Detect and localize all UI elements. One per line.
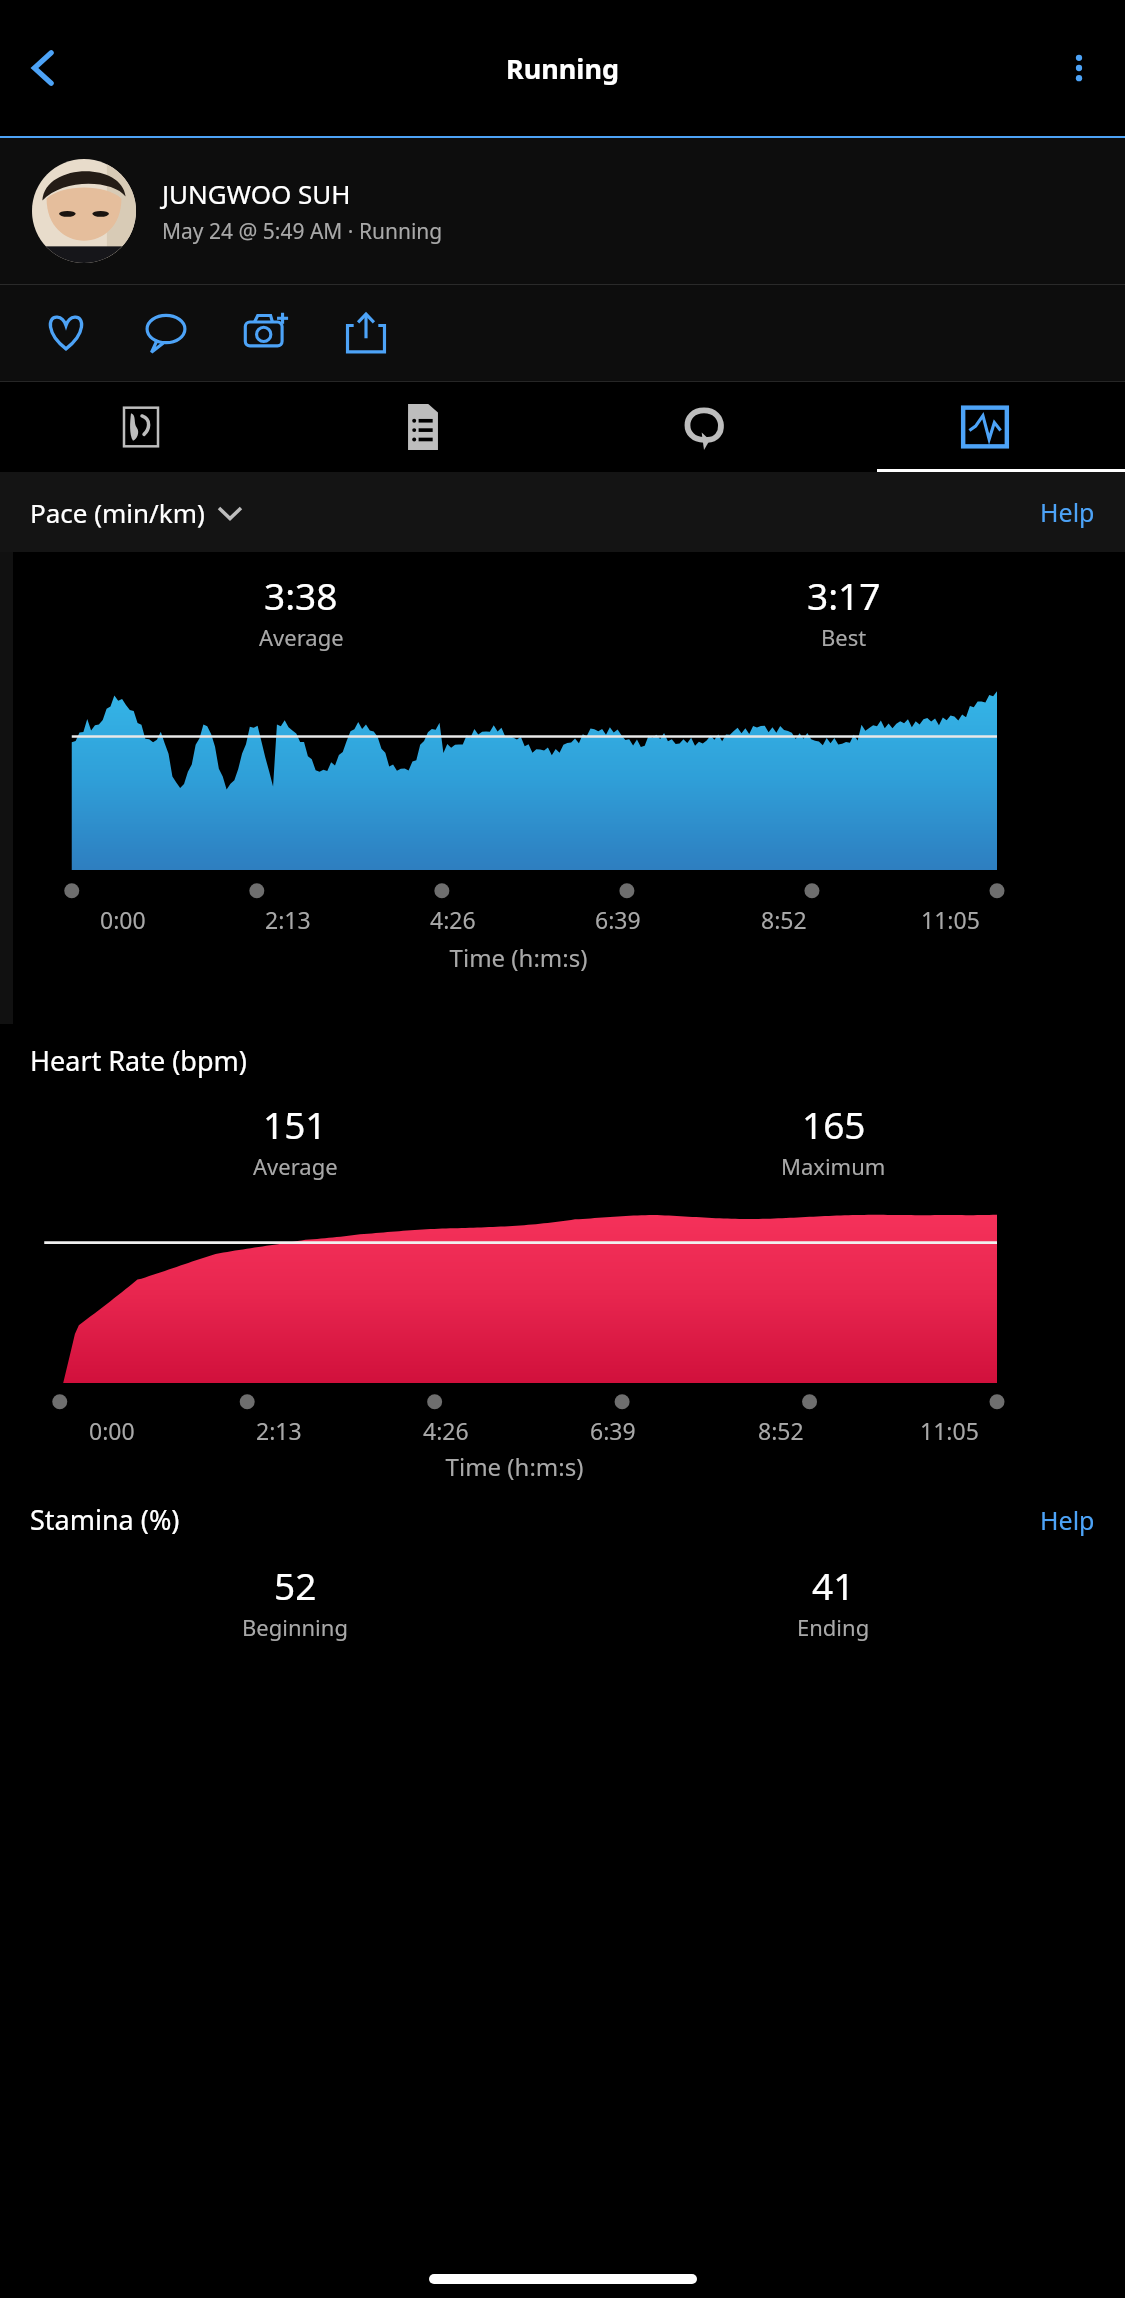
- staticText: 0:00: [89, 1415, 135, 1446]
- staticText: Heart Rate (bpm): [30, 1042, 247, 1079]
- button[interactable]: JUNGWOO SUH: [0, 138, 1125, 284]
- staticText: 52: [274, 1560, 317, 1610]
- staticText: 8:52: [761, 904, 807, 935]
- staticText: Beginning: [242, 1612, 348, 1642]
- staticText: Average: [259, 622, 344, 652]
- staticText: Pace (min/km): [30, 495, 205, 530]
- staticText: Running: [506, 50, 620, 87]
- button[interactable]: Pace (min/km): [30, 495, 241, 530]
- button[interactable]: Laps: [563, 382, 844, 472]
- staticText: May 24 @ 5:49 AM · Running: [162, 217, 443, 246]
- button[interactable]: Help: [1040, 1503, 1095, 1537]
- staticText: Ending: [797, 1612, 870, 1642]
- staticText: 41: [812, 1560, 855, 1610]
- button[interactable]: Charts: [844, 382, 1125, 472]
- button[interactable]: Details: [282, 382, 563, 472]
- staticText: 3:38: [264, 570, 338, 620]
- staticText: 151: [263, 1099, 327, 1149]
- staticText: 11:05: [920, 1415, 979, 1446]
- staticText: 3:17: [807, 570, 881, 620]
- button[interactable]: Help: [1040, 495, 1095, 529]
- button[interactable]: Share: [316, 285, 416, 381]
- staticText: Best: [821, 622, 867, 652]
- staticText: 6:39: [590, 1415, 636, 1446]
- staticText: 2:13: [256, 1415, 302, 1446]
- staticText: Stamina (%): [30, 1501, 180, 1538]
- button[interactable]: Map: [0, 382, 282, 472]
- button[interactable]: Comment: [116, 285, 216, 381]
- staticText: Time (h:m:s): [0, 941, 1037, 974]
- staticText: 6:39: [595, 904, 641, 935]
- button[interactable]: Like: [16, 285, 116, 381]
- staticText: 8:52: [758, 1415, 804, 1446]
- staticText: 0:00: [100, 904, 146, 935]
- staticText: Maximum: [781, 1151, 886, 1181]
- staticText: Average: [253, 1151, 338, 1181]
- staticText: 4:26: [430, 904, 476, 935]
- staticText: 2:13: [265, 904, 311, 935]
- button[interactable]: Add photo: [216, 285, 316, 381]
- staticText: 165: [802, 1099, 866, 1149]
- button[interactable]: Back: [8, 32, 80, 104]
- staticText: Help: [1040, 1503, 1095, 1537]
- staticText: Help: [1040, 495, 1095, 529]
- staticText: Time (h:m:s): [0, 1450, 1029, 1483]
- staticText: 11:05: [921, 904, 980, 935]
- staticText: JUNGWOO SUH: [162, 176, 351, 211]
- staticText: 4:26: [423, 1415, 469, 1446]
- button[interactable]: More options: [1043, 32, 1115, 104]
